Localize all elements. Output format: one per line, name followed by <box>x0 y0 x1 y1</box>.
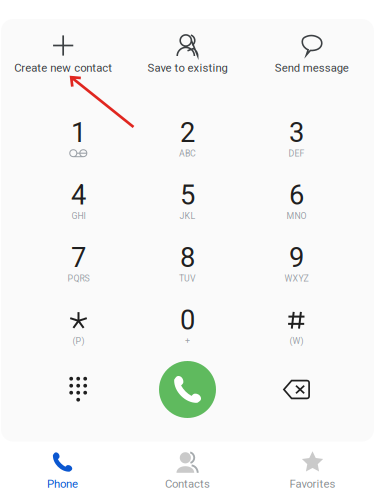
staticText: 7 <box>71 242 86 274</box>
staticText: 4 <box>71 179 86 211</box>
staticText: Contacts <box>165 477 210 491</box>
button[interactable]: Phone <box>0 442 125 500</box>
button[interactable]: Contacts <box>125 442 250 500</box>
staticText: 5 <box>180 179 195 211</box>
button[interactable]: Call <box>133 360 242 418</box>
staticText: 3 <box>289 117 304 149</box>
button[interactable]: 4 <box>24 170 133 232</box>
button[interactable]: Keypad <box>24 360 133 418</box>
staticText: JKL <box>179 211 195 221</box>
staticText: (P) <box>72 336 84 346</box>
button[interactable]: 3 <box>242 107 351 170</box>
staticText: PQRS <box>67 273 89 284</box>
button[interactable]: Backspace <box>242 360 351 418</box>
button[interactable]: 1 <box>24 107 133 170</box>
staticText: ABC <box>179 148 196 159</box>
staticText: TUV <box>179 273 196 284</box>
staticText: Phone <box>47 477 78 491</box>
staticText: 0 <box>180 304 195 336</box>
button[interactable]: Send message <box>250 34 374 74</box>
staticText: 2 <box>180 117 195 149</box>
staticText: 9 <box>289 242 304 274</box>
staticText: + <box>185 336 190 346</box>
staticText: MNO <box>286 211 306 221</box>
staticText: DEF <box>288 148 304 159</box>
staticText: GHI <box>71 211 85 221</box>
button[interactable]: Save to existing <box>125 34 250 74</box>
staticText: WXYZ <box>284 273 308 284</box>
button[interactable]: (P) <box>24 295 133 357</box>
button[interactable]: Favorites <box>250 442 375 500</box>
staticText: 8 <box>180 242 195 274</box>
staticText: Create new contact <box>14 61 112 75</box>
button[interactable]: Create new contact <box>1 34 125 74</box>
staticText: 6 <box>289 179 304 211</box>
staticText: Send message <box>275 61 349 75</box>
button[interactable]: 5 <box>133 170 242 232</box>
staticText: Save to existing <box>147 61 227 75</box>
staticText: Favorites <box>289 477 335 491</box>
button[interactable]: 7 <box>24 232 133 295</box>
staticText: (W) <box>289 336 303 346</box>
button[interactable]: 2 <box>133 107 242 170</box>
button[interactable]: 6 <box>242 170 351 232</box>
button[interactable]: (W) <box>242 295 351 357</box>
button[interactable]: 0 <box>133 295 242 357</box>
button[interactable]: 9 <box>242 232 351 295</box>
button[interactable]: 8 <box>133 232 242 295</box>
staticText: 1 <box>71 117 86 149</box>
